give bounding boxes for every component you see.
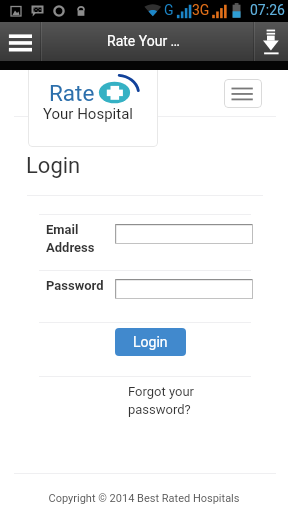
staticText: 07:26 [250,2,285,18]
button[interactable]: Rate [28,64,158,147]
button[interactable]: Open navigation drawer [0,22,41,61]
staticText: Copyright © 2014 Best Rated Hospitals [0,492,288,505]
button[interactable]: Login [115,328,186,356]
button[interactable]: Toggle navigation [224,79,262,108]
staticText: G [164,2,174,18]
staticText: Login [26,153,81,179]
button[interactable]: Forgot your password? [128,384,194,417]
button[interactable] [115,224,253,244]
staticText: Forgot your password? [128,384,194,417]
staticText: Login [133,334,168,350]
staticText: Password [46,278,104,293]
staticText: Rate Your … [107,33,180,49]
staticText: 3G [192,2,210,18]
staticText: Rate [49,80,95,106]
button[interactable] [115,279,253,299]
staticText: Email Address [46,222,95,255]
staticText: Your Hospital [43,105,133,123]
button[interactable]: Download [254,22,288,61]
